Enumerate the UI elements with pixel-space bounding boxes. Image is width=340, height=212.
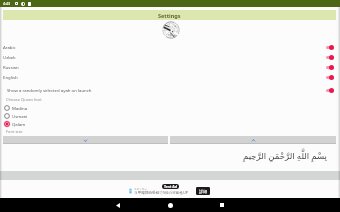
staticText: ヨ甲脳同時受精で5倍の可能性UP (134, 190, 188, 195)
staticText: 4:43 (3, 1, 11, 6)
staticText: Choose Quran font (6, 97, 42, 102)
button[interactable]: Recent apps (207, 198, 237, 212)
staticText: Arabic (3, 44, 16, 50)
staticText: بِسْمِ اللَّهِ الرَّحْمَنِ الرَّحِيمِ (243, 150, 327, 162)
button[interactable]: Back (103, 198, 133, 212)
button[interactable]: Usmani (3, 112, 336, 120)
staticText: Show a randomly selected ayah on launch (7, 87, 92, 93)
staticText: 詳細 (199, 189, 208, 194)
staticText: English (3, 74, 18, 80)
staticText: Test Ad (164, 184, 178, 189)
button[interactable]: Home (155, 198, 185, 212)
staticText: Uzbek (3, 54, 16, 60)
staticText: Madina (12, 105, 28, 111)
button[interactable]: Russian (3, 62, 336, 72)
button[interactable]: Arabic (3, 42, 336, 52)
staticText: Russian (3, 64, 19, 70)
staticText: Usmani (12, 113, 28, 119)
button[interactable]: Qalam (3, 120, 336, 128)
staticText: Font size (6, 129, 23, 134)
button[interactable]: Show a randomly selected ayah on launch (3, 85, 336, 95)
staticText: スポンサー (134, 187, 148, 190)
button[interactable]: Collapse font size (170, 136, 336, 144)
button[interactable]: Install app (196, 187, 210, 195)
staticText: Qalam (12, 121, 26, 127)
button[interactable]: English (3, 72, 336, 82)
staticText: Settings (158, 12, 181, 19)
button[interactable]: Uzbek (3, 52, 336, 62)
button[interactable]: Expand font size (3, 136, 168, 144)
button[interactable]: Madina (3, 104, 336, 112)
